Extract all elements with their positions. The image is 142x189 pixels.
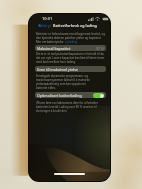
staticText: Mer om batteriytelse (36, 40, 65, 44)
staticText: Innebygde dynamiske programvare- og (36, 74, 88, 78)
button[interactable]: Evne til maksimal ytelse (35, 66, 106, 72)
staticText: den kjemiske alderen påvirker ytelse og … (36, 36, 102, 40)
staticText: iPhone lærer av ladevanene dine for å fo… (36, 101, 98, 105)
staticText: Avbryt (40, 23, 51, 28)
staticText: 97 % (96, 46, 104, 51)
staticText: ytelsespåvirkning som kan oppstå når (36, 82, 86, 86)
staticText: Maksimal kapasitet (37, 46, 71, 51)
button[interactable]: og lading (65, 40, 78, 44)
button[interactable]: Optimalisert batterilading, på (93, 93, 104, 98)
staticText: Batteriforbruk og lading (53, 23, 97, 28)
staticText: 10:01 (42, 16, 53, 21)
button[interactable]: Maksimal kapasitet (35, 45, 106, 51)
staticText: Optimalisert batterilading (37, 93, 82, 98)
button[interactable]: Avbryt (38, 23, 51, 28)
staticText: maskinvaresystemer bidrar til å motvirke (36, 78, 90, 82)
button[interactable]: Optimalisert batterilading (35, 92, 106, 98)
staticText: med bruk mellom hver lading. (36, 60, 76, 64)
staticText: Dette er et mål på batterikapasiteten i … (36, 52, 104, 56)
staticText: du trenger å bruke den. (36, 109, 68, 113)
staticText: Batterier er forbruksvarer med begrenset… (36, 32, 105, 36)
staticText: batteriet eldes. (36, 86, 56, 90)
staticText: batteriets levetid. Lading over 80 % uts… (36, 105, 97, 109)
staticText: det var nytt. Lavere kapasitet kan føre … (36, 56, 105, 60)
staticText: Evne til maksimal ytelse (37, 67, 79, 72)
